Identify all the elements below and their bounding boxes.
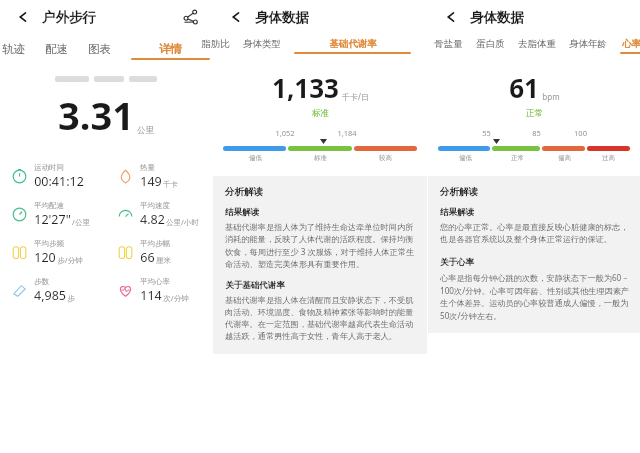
button[interactable]: 脂肪比 [199, 38, 232, 52]
staticText: 平均配速 [34, 201, 64, 210]
staticText: 偏高 [558, 154, 571, 162]
button[interactable]: 身体年龄 [567, 38, 609, 52]
staticText: 过高 [602, 154, 615, 162]
button[interactable]: 平均速度 [106, 195, 212, 233]
staticText: 心率 [622, 38, 640, 50]
staticText: 千卡/日 [342, 91, 369, 102]
staticText: 149 [140, 173, 162, 190]
staticText: 平均速度 [140, 201, 170, 210]
button[interactable]: 热量 [106, 157, 212, 195]
button[interactable]: 身体类型 [241, 38, 283, 52]
staticText: 去脂体重 [518, 38, 556, 50]
staticText: 身体数据 [470, 9, 524, 26]
staticText: 公里/小时 [166, 217, 199, 227]
staticText: 平均心率 [140, 277, 170, 286]
button[interactable]: 平均步频 [0, 233, 106, 271]
button[interactable]: 运动时间 [0, 157, 106, 195]
staticText: 户外步行 [42, 9, 96, 26]
button[interactable]: Back [12, 6, 34, 28]
staticText: 厘米 [156, 256, 171, 265]
staticText: 身体数据 [255, 9, 309, 26]
staticText: 1,184 [337, 128, 357, 138]
staticText: 身体年龄 [569, 38, 607, 50]
staticText: 正常 [526, 108, 543, 119]
staticText: 您的心率正常。心率是最直接反映心脏健康的标志，也是各器官系统以及整个身体正常运行… [440, 222, 630, 245]
staticText: 骨盐量 [434, 38, 463, 50]
button[interactable]: 去脂体重 [516, 38, 558, 52]
staticText: 标准 [314, 154, 327, 162]
button[interactable]: 图表 [86, 42, 113, 58]
staticText: 标准 [312, 108, 329, 119]
staticText: 脂肪比 [201, 38, 230, 50]
staticText: 步 [67, 294, 75, 303]
staticText: 85 [532, 128, 541, 138]
button[interactable]: 心率 [618, 38, 640, 54]
staticText: 配速 [45, 42, 68, 56]
staticText: 身体类型 [243, 38, 281, 50]
button[interactable]: 轨迹 [0, 42, 27, 58]
staticText: 66 [140, 249, 155, 266]
staticText: 分析解读 [225, 186, 263, 198]
staticText: 平均步幅 [140, 239, 170, 248]
button[interactable]: 基础代谢率 [292, 38, 413, 54]
staticText: 较高 [379, 154, 392, 162]
staticText: 偏低 [459, 154, 472, 162]
staticText: 结果解读 [440, 207, 474, 218]
staticText: 1,052 [275, 128, 295, 138]
staticText: 公里 [137, 125, 154, 136]
staticText: 详情 [159, 42, 182, 56]
staticText: 步数 [34, 277, 49, 286]
button[interactable]: Back [440, 6, 462, 28]
staticText: 关于基础代谢率 [225, 280, 285, 291]
staticText: 基础代谢率 [329, 38, 377, 50]
staticText: 平均步频 [34, 239, 64, 248]
staticText: 61 [509, 70, 539, 105]
staticText: 12'27" [34, 211, 71, 228]
staticText: 120 [34, 249, 56, 266]
button[interactable]: 平均心率 [106, 271, 212, 309]
staticText: 正常 [511, 154, 524, 162]
button[interactable]: 平均配速 [0, 195, 106, 233]
staticText: 热量 [140, 163, 155, 172]
staticText: 图表 [88, 42, 111, 56]
button[interactable]: Back [225, 6, 247, 28]
staticText: bpm [542, 91, 560, 102]
staticText: 分析解读 [440, 186, 478, 198]
staticText: 步/分钟 [57, 255, 83, 265]
button[interactable]: 骨盐量 [432, 38, 465, 52]
staticText: 100 [574, 128, 587, 138]
staticText: 3.31 [58, 89, 134, 141]
staticText: 4.82 [140, 211, 165, 228]
staticText: 114 [140, 287, 162, 304]
staticText: 基础代谢率是指人体为了维持生命达牵单位时间内所消耗的能量，反映了人体代谢的活跃程… [225, 222, 417, 270]
staticText: 1,133 [272, 70, 339, 105]
staticText: 蛋白质 [476, 38, 505, 50]
staticText: 运动时间 [34, 163, 64, 172]
staticText: 轨迹 [2, 42, 25, 56]
button[interactable]: 详情 [129, 42, 212, 60]
staticText: 55 [482, 128, 491, 138]
staticText: 结果解读 [225, 207, 259, 218]
staticText: 次/分钟 [163, 293, 189, 303]
staticText: /公里 [72, 217, 90, 227]
staticText: 心率是指每分钟心跳的次数，安静状态下一般为60－100次/分钟。心率可因年龄、性… [440, 272, 630, 321]
button[interactable]: 平均步幅 [106, 233, 212, 271]
staticText: 00:41:12 [34, 173, 84, 190]
staticText: 基础代谢率是指人体在清醒而且安静状态下，不受肌肉活动、环境温度、食物及精神紧张等… [225, 295, 417, 342]
staticText: 关于心率 [440, 257, 474, 268]
staticText: 偏低 [249, 154, 262, 162]
button[interactable]: 步数 [0, 271, 106, 309]
staticText: 4,985 [34, 287, 66, 304]
staticText: 千卡 [163, 180, 178, 189]
button[interactable]: Route [180, 7, 200, 27]
button[interactable]: 蛋白质 [474, 38, 507, 52]
button[interactable]: 配速 [43, 42, 70, 58]
